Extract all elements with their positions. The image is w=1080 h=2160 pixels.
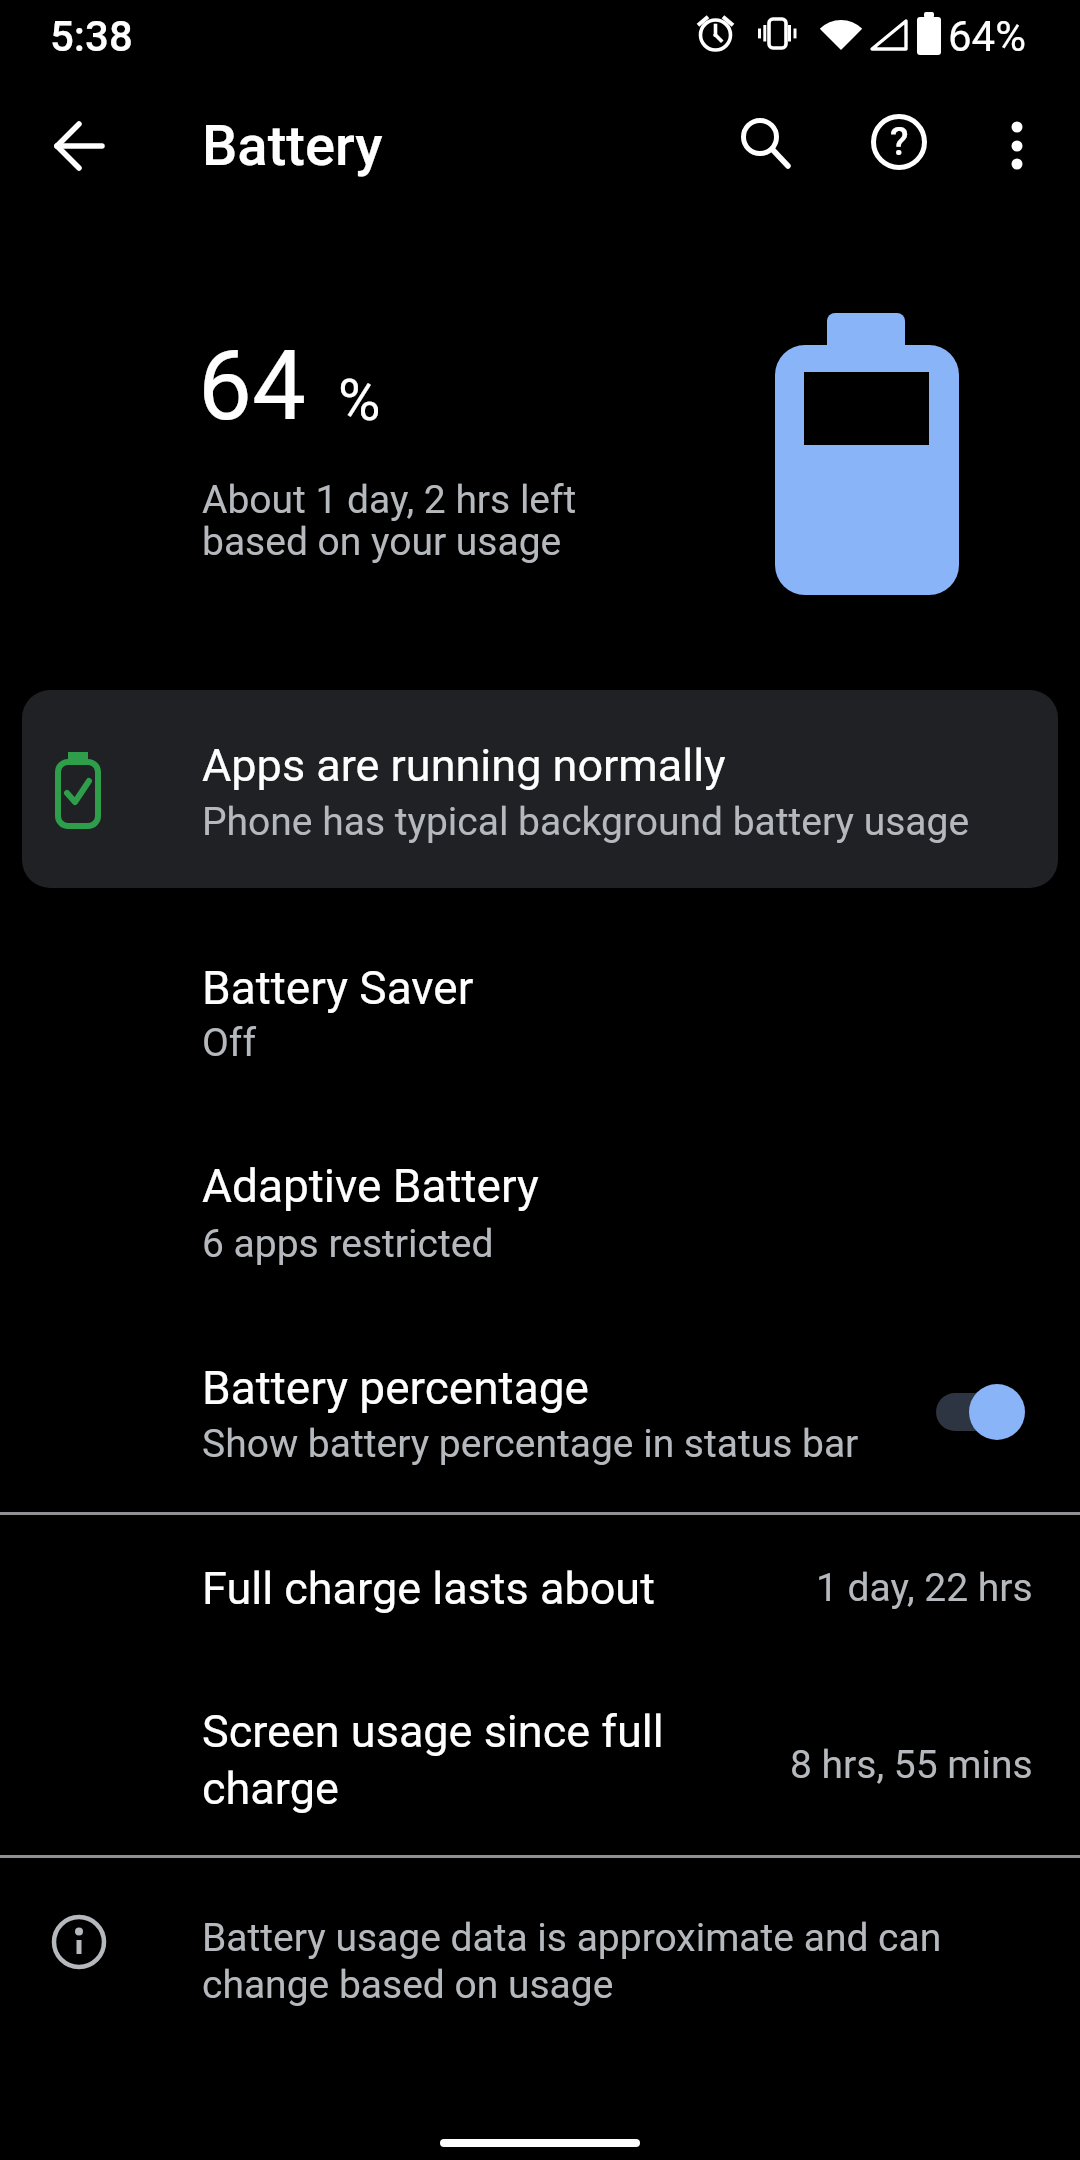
staticText: About 1 day, 2 hrs left based on your us… [202, 477, 577, 565]
staticText: Battery [202, 113, 383, 179]
button[interactable]: Battery percentage [0, 1330, 1080, 1490]
staticText: Battery percentage [202, 1361, 589, 1415]
button[interactable] [31, 98, 127, 194]
staticText: 64 [198, 330, 306, 443]
staticText: Battery usage data is approximate and ca… [202, 1915, 942, 2008]
button[interactable] [715, 98, 811, 194]
staticText: ? [890, 120, 909, 165]
button[interactable]: Apps are running normally [22, 690, 1058, 888]
staticText: 1 day, 22 hrs [816, 1565, 1033, 1611]
staticText: Battery Saver [202, 961, 474, 1015]
staticText: Adaptive Battery [202, 1159, 539, 1213]
button[interactable]: Full charge lasts about [0, 1520, 1080, 1660]
staticText: % [338, 366, 381, 434]
button[interactable]: Battery Saver [0, 930, 1080, 1090]
staticText: 8 hrs, 55 mins [790, 1742, 1033, 1788]
staticText: Full charge lasts about [202, 1562, 655, 1615]
staticText: Screen usage since full charge [202, 1705, 664, 1815]
staticText: 6 apps restricted [202, 1221, 494, 1267]
staticText: Phone has typical background battery usa… [202, 799, 970, 845]
staticText: Off [202, 1020, 256, 1066]
button[interactable]: Adaptive Battery [0, 1130, 1080, 1290]
button[interactable]: Screen usage since full charge [0, 1660, 1080, 1855]
button[interactable] [969, 98, 1065, 194]
button[interactable]: ? [851, 98, 947, 194]
staticText: Apps are running normally [202, 739, 726, 792]
staticText: Show battery percentage in status bar [202, 1421, 859, 1467]
staticText: 5:38 [50, 12, 133, 61]
staticText: 64% [948, 12, 1026, 61]
